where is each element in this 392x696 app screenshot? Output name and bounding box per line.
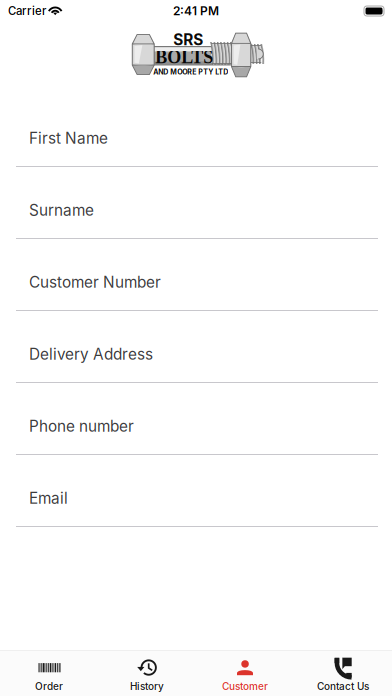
staticText: Carrier <box>8 4 46 18</box>
staticText: 2:41 PM <box>173 4 219 18</box>
button[interactable]: Surname <box>0 167 392 239</box>
staticText: BOLTS <box>155 47 213 67</box>
staticText: Order <box>35 680 63 692</box>
staticText: Customer <box>222 680 268 692</box>
button[interactable]: Contact Us <box>294 650 392 696</box>
staticText: Delivery Address <box>29 345 153 364</box>
staticText: History <box>130 680 164 692</box>
button[interactable]: History <box>98 650 196 696</box>
button[interactable]: Delivery Address <box>0 311 392 383</box>
button[interactable]: First Name <box>0 95 392 167</box>
button[interactable]: Customer <box>196 650 294 696</box>
staticText: Customer Number <box>29 273 161 292</box>
button[interactable]: Email <box>0 455 392 527</box>
staticText: AND MOORE PTY LTD <box>153 68 228 76</box>
button[interactable]: Customer Number <box>0 239 392 311</box>
staticText: Surname <box>29 201 94 220</box>
staticText: Email <box>29 489 68 508</box>
staticText: Phone number <box>29 417 134 436</box>
staticText: First Name <box>29 129 108 148</box>
button[interactable]: Order <box>0 650 98 696</box>
staticText: Contact Us <box>317 680 369 692</box>
staticText: SRS <box>173 30 203 49</box>
button[interactable]: Phone number <box>0 383 392 455</box>
